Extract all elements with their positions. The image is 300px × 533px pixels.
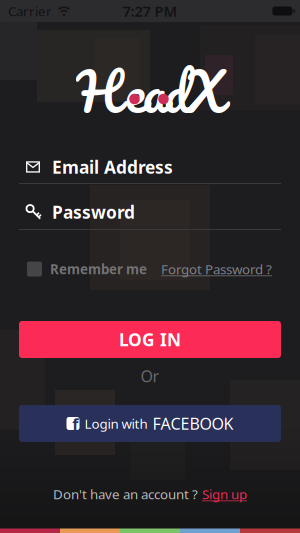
button[interactable]: Forgot Password ? [161, 260, 272, 278]
staticText: Sign up [202, 485, 247, 503]
button[interactable]: Password [0, 200, 300, 223]
staticText: LOG IN [119, 328, 181, 351]
button[interactable]: Sign up [202, 485, 247, 503]
button[interactable]: LOG IN [19, 321, 281, 358]
staticText: HeadX [76, 47, 223, 136]
button[interactable]: Email Address [0, 155, 300, 178]
staticText: Or [140, 365, 159, 387]
staticText: Password [52, 200, 135, 223]
staticText: Forgot Password ? [161, 260, 272, 278]
staticText: FACEBOOK [152, 413, 233, 434]
button[interactable]: f [19, 405, 281, 442]
staticText: Login with [84, 415, 147, 432]
staticText: Carrier [8, 2, 52, 20]
staticText: Email Address [52, 155, 173, 178]
staticText: Remember me [50, 260, 147, 278]
staticText: 7:27 PM [122, 1, 177, 21]
staticText: f [72, 413, 78, 435]
staticText: Don't have an account ? [53, 485, 198, 503]
